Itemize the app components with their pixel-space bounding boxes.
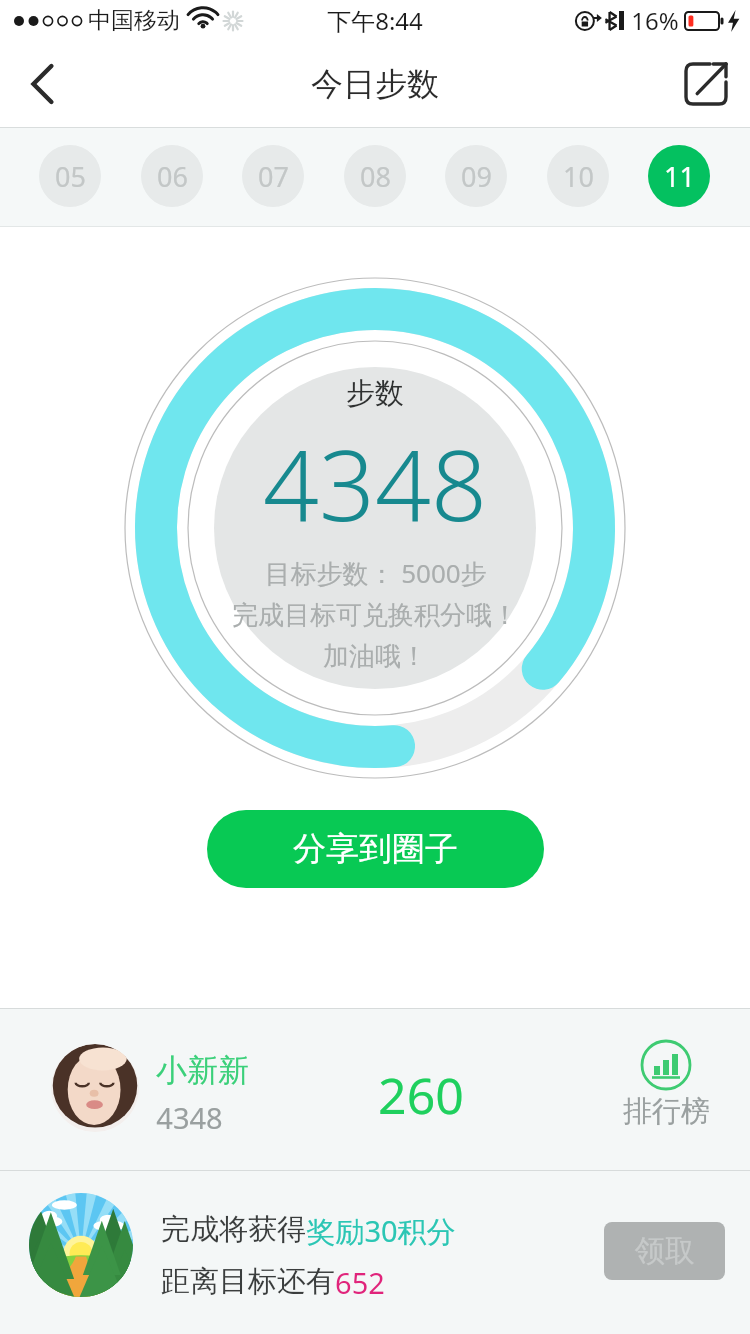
staticText: 05 (55, 158, 86, 195)
button[interactable]: 10 (547, 145, 609, 207)
staticText: 领取 (635, 1232, 695, 1270)
staticText: 分享到圈子 (293, 828, 458, 870)
staticText: 完成目标可兑换积分哦！ (232, 599, 518, 632)
staticText: 06 (157, 158, 188, 195)
button[interactable]: 小新新 (0, 1009, 750, 1170)
button[interactable]: 11 (648, 145, 710, 207)
staticText: 奖励30积分 (306, 1211, 456, 1251)
staticText: 11 (664, 158, 695, 195)
staticText: 小新新 (156, 1051, 249, 1090)
button[interactable]: 08 (344, 145, 406, 207)
staticText: 今日步数 (311, 64, 439, 104)
staticText: 16% (631, 4, 679, 37)
staticText: 目标步数： 5000步 (264, 555, 487, 591)
staticText: 4348 (263, 416, 487, 549)
staticText: 652 (335, 1263, 385, 1302)
button[interactable]: 05 (39, 145, 101, 207)
button[interactable]: 06 (141, 145, 203, 207)
staticText: 排行榜 (623, 1093, 710, 1130)
button[interactable]: 领取 (604, 1222, 725, 1280)
button[interactable]: 09 (445, 145, 507, 207)
staticText: 07 (258, 158, 289, 195)
staticText: 4348 (156, 1098, 223, 1137)
staticText: 完成将获得 (161, 1211, 306, 1248)
staticText: 中国移动 (88, 6, 180, 35)
staticText: 步数 (346, 375, 404, 412)
staticText: 加油哦！ (323, 640, 427, 673)
staticText: 距离目标还有 (161, 1263, 335, 1300)
staticText: 08 (360, 158, 391, 195)
button[interactable]: 07 (242, 145, 304, 207)
staticText: 09 (461, 158, 492, 195)
staticText: 260 (378, 1061, 464, 1129)
button[interactable]: Back (0, 40, 86, 128)
staticText: 下午8:44 (327, 4, 423, 37)
staticText: 10 (563, 158, 594, 195)
button[interactable]: Share (662, 40, 750, 128)
button[interactable]: 分享到圈子 (207, 810, 544, 888)
button[interactable]: 排行榜 (612, 1039, 720, 1141)
